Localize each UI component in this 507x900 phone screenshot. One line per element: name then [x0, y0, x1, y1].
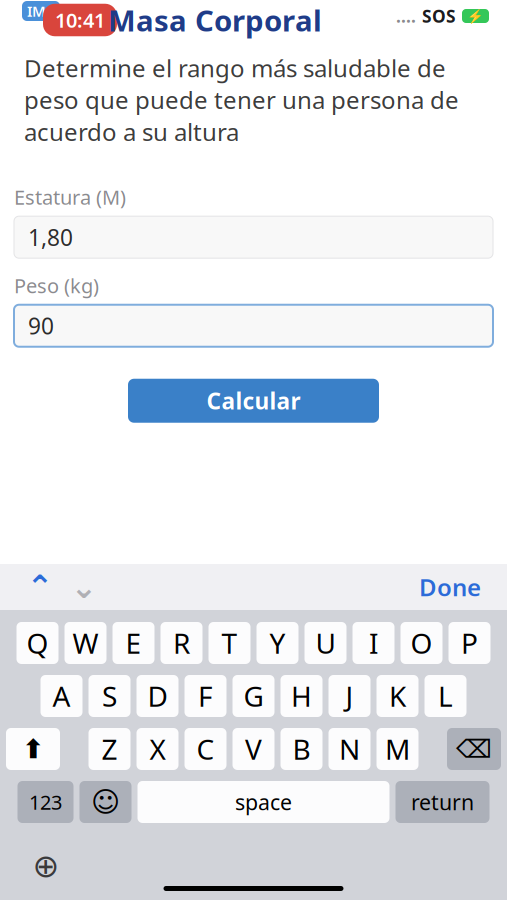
- button[interactable]: Emoji: [79, 781, 131, 823]
- button[interactable]: Change keyboard language: [24, 848, 68, 884]
- staticText: Peso (kg): [14, 272, 99, 299]
- button[interactable]: G: [232, 675, 274, 717]
- staticText: Y: [269, 624, 285, 662]
- staticText: ⊕: [32, 848, 59, 884]
- button[interactable]: J: [328, 675, 370, 717]
- staticText: R: [173, 624, 190, 662]
- button[interactable]: X: [136, 728, 178, 770]
- staticText: W: [72, 624, 98, 662]
- button[interactable]: Y: [256, 622, 298, 664]
- button[interactable]: P: [448, 622, 490, 664]
- staticText: K: [389, 677, 406, 715]
- staticText: E: [125, 624, 141, 662]
- button[interactable]: V: [232, 728, 274, 770]
- staticText: 90: [28, 311, 54, 341]
- button[interactable]: Q: [16, 622, 58, 664]
- staticText: ⌄: [70, 569, 97, 605]
- staticText: P: [461, 624, 478, 662]
- button[interactable]: E: [112, 622, 154, 664]
- staticText: ⌃: [26, 569, 53, 605]
- button[interactable]: C: [184, 728, 226, 770]
- staticText: space: [235, 788, 292, 816]
- button[interactable]: O: [400, 622, 442, 664]
- button[interactable]: K: [376, 675, 418, 717]
- button[interactable]: space: [137, 781, 389, 823]
- staticText: ☺: [91, 786, 120, 818]
- staticText: SOS: [422, 4, 456, 27]
- button[interactable]: Done: [405, 565, 495, 609]
- staticText: J: [345, 677, 353, 715]
- button[interactable]: H: [280, 675, 322, 717]
- button[interactable]: Next field: [62, 565, 106, 609]
- button[interactable]: I: [352, 622, 394, 664]
- button[interactable]: Z: [88, 728, 130, 770]
- button[interactable]: Delete: [447, 728, 501, 770]
- button[interactable]: T: [208, 622, 250, 664]
- button[interactable]: N: [328, 728, 370, 770]
- staticText: return: [411, 788, 474, 816]
- button[interactable]: B: [280, 728, 322, 770]
- staticText: C: [196, 730, 214, 768]
- staticText: U: [315, 624, 335, 662]
- button[interactable]: Shift: [6, 728, 60, 770]
- staticText: O: [410, 624, 432, 662]
- staticText: ⬆: [22, 734, 44, 764]
- staticText: I: [369, 624, 378, 662]
- button[interactable]: D: [136, 675, 178, 717]
- button[interactable]: 123: [17, 781, 73, 823]
- button[interactable]: 1,80: [14, 216, 493, 258]
- staticText: M: [385, 730, 410, 768]
- button[interactable]: U: [304, 622, 346, 664]
- staticText: Masa Corporal: [108, 0, 322, 39]
- staticText: 1,80: [28, 222, 73, 252]
- staticText: B: [292, 730, 310, 768]
- button[interactable]: L: [424, 675, 466, 717]
- staticText: Z: [101, 730, 117, 768]
- staticText: 10:41: [55, 7, 105, 33]
- button[interactable]: Previous field: [18, 565, 62, 609]
- staticText: ⚡: [467, 8, 484, 24]
- button[interactable]: R: [160, 622, 202, 664]
- button[interactable]: 90: [14, 305, 493, 347]
- staticText: IMC: [27, 1, 55, 21]
- button[interactable]: Calcular: [128, 379, 379, 423]
- button[interactable]: F: [184, 675, 226, 717]
- staticText: T: [221, 624, 237, 662]
- staticText: D: [147, 677, 167, 715]
- staticText: F: [198, 677, 213, 715]
- staticText: ⌫: [456, 735, 492, 763]
- staticText: ....: [396, 4, 416, 27]
- button[interactable]: M: [376, 728, 418, 770]
- staticText: Determine el rango más saludable de peso…: [24, 52, 459, 148]
- staticText: X: [149, 730, 165, 768]
- staticText: 123: [29, 789, 62, 815]
- button[interactable]: W: [64, 622, 106, 664]
- staticText: Calcular: [206, 386, 300, 416]
- staticText: A: [52, 677, 70, 715]
- staticText: L: [438, 677, 453, 715]
- staticText: Estatura (M): [14, 184, 126, 210]
- button[interactable]: A: [40, 675, 82, 717]
- staticText: N: [339, 730, 360, 768]
- staticText: Done: [419, 571, 481, 603]
- staticText: H: [291, 677, 312, 715]
- staticText: Q: [26, 624, 48, 662]
- staticText: G: [243, 677, 263, 715]
- staticText: V: [245, 730, 262, 768]
- button[interactable]: S: [88, 675, 130, 717]
- staticText: S: [102, 677, 117, 715]
- button[interactable]: return: [395, 781, 489, 823]
